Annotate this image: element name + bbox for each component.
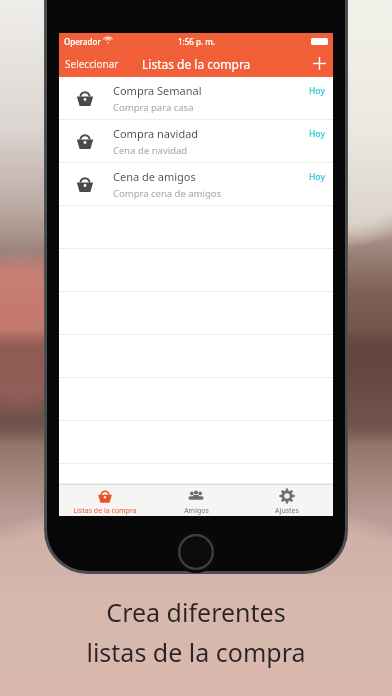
staticText: Listas de la compra — [142, 56, 251, 72]
staticText: Cena de navidad — [113, 144, 188, 157]
button[interactable]: Añadir lista — [306, 53, 333, 74]
staticText: Compra Semanal — [113, 83, 202, 98]
button[interactable]: Cena de amigos — [59, 163, 333, 206]
staticText: 1:56 p. m. — [178, 36, 215, 47]
staticText: Amigos — [184, 506, 209, 516]
staticText: Hoy — [309, 85, 325, 97]
button[interactable]: Inicio — [175, 531, 217, 573]
button[interactable]: Ajustes — [242, 485, 332, 516]
staticText: listas de la compra — [86, 635, 306, 669]
button[interactable]: Compra navidad — [59, 120, 333, 163]
button[interactable]: Seleccionar — [59, 53, 125, 75]
staticText: Crea diferentes — [106, 595, 286, 629]
staticText: Listas de la compra — [73, 506, 137, 516]
button[interactable]: Compra Semanal — [59, 77, 333, 120]
staticText: Cena de amigos — [113, 169, 196, 184]
staticText: Compra cena de amigos — [113, 187, 222, 200]
staticText: Compra navidad — [113, 126, 199, 141]
staticText: Ajustes — [275, 506, 299, 516]
button[interactable]: Listas de la compra — [60, 485, 150, 516]
staticText: Seleccionar — [65, 57, 119, 71]
staticText: Hoy — [309, 171, 325, 183]
staticText: Operador — [64, 36, 101, 47]
staticText: Compra para casa — [113, 101, 194, 114]
staticText: Hoy — [309, 128, 325, 140]
button[interactable]: Amigos — [151, 485, 241, 516]
